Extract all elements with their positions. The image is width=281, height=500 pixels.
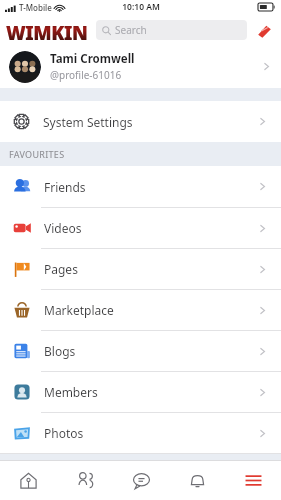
button[interactable]: Compose post	[253, 19, 275, 41]
button[interactable]: Notifications	[169, 461, 225, 500]
staticText: Members	[44, 384, 98, 400]
staticText: @profile-61016	[50, 68, 122, 82]
button[interactable]: Photos	[0, 413, 281, 453]
staticText: Pages	[44, 261, 78, 277]
staticText: Photos	[44, 425, 84, 441]
button[interactable]: Friends	[0, 166, 281, 207]
staticText: Friends	[44, 179, 86, 195]
staticText: Search	[115, 23, 147, 37]
button[interactable]: Messages	[113, 461, 169, 500]
staticText: FAVOURITES	[9, 148, 65, 160]
button[interactable]: Blogs	[0, 331, 281, 371]
staticText: Tami Cromwell	[50, 51, 135, 67]
staticText: Blogs	[44, 343, 76, 359]
button[interactable]: Marketplace	[0, 290, 281, 330]
button[interactable]: Home	[0, 461, 57, 500]
staticText: Marketplace	[44, 302, 114, 318]
button[interactable]: Members	[0, 372, 281, 412]
button[interactable]: WIMKIN home	[6, 20, 92, 40]
staticText: 10:10 AM	[122, 1, 160, 13]
staticText: T-Mobile	[19, 2, 52, 13]
button[interactable]: Menu	[225, 461, 281, 500]
staticText: Videos	[44, 220, 82, 236]
button[interactable]: Friends	[57, 461, 113, 500]
button[interactable]: System Settings	[0, 101, 281, 142]
staticText: System Settings	[43, 114, 133, 130]
button[interactable]: Search	[96, 20, 247, 40]
button[interactable]: Videos	[0, 208, 281, 248]
button[interactable]: Pages	[0, 249, 281, 289]
button[interactable]: Tami Cromwell	[0, 45, 281, 88]
staticText: WIMKIN	[6, 20, 88, 40]
